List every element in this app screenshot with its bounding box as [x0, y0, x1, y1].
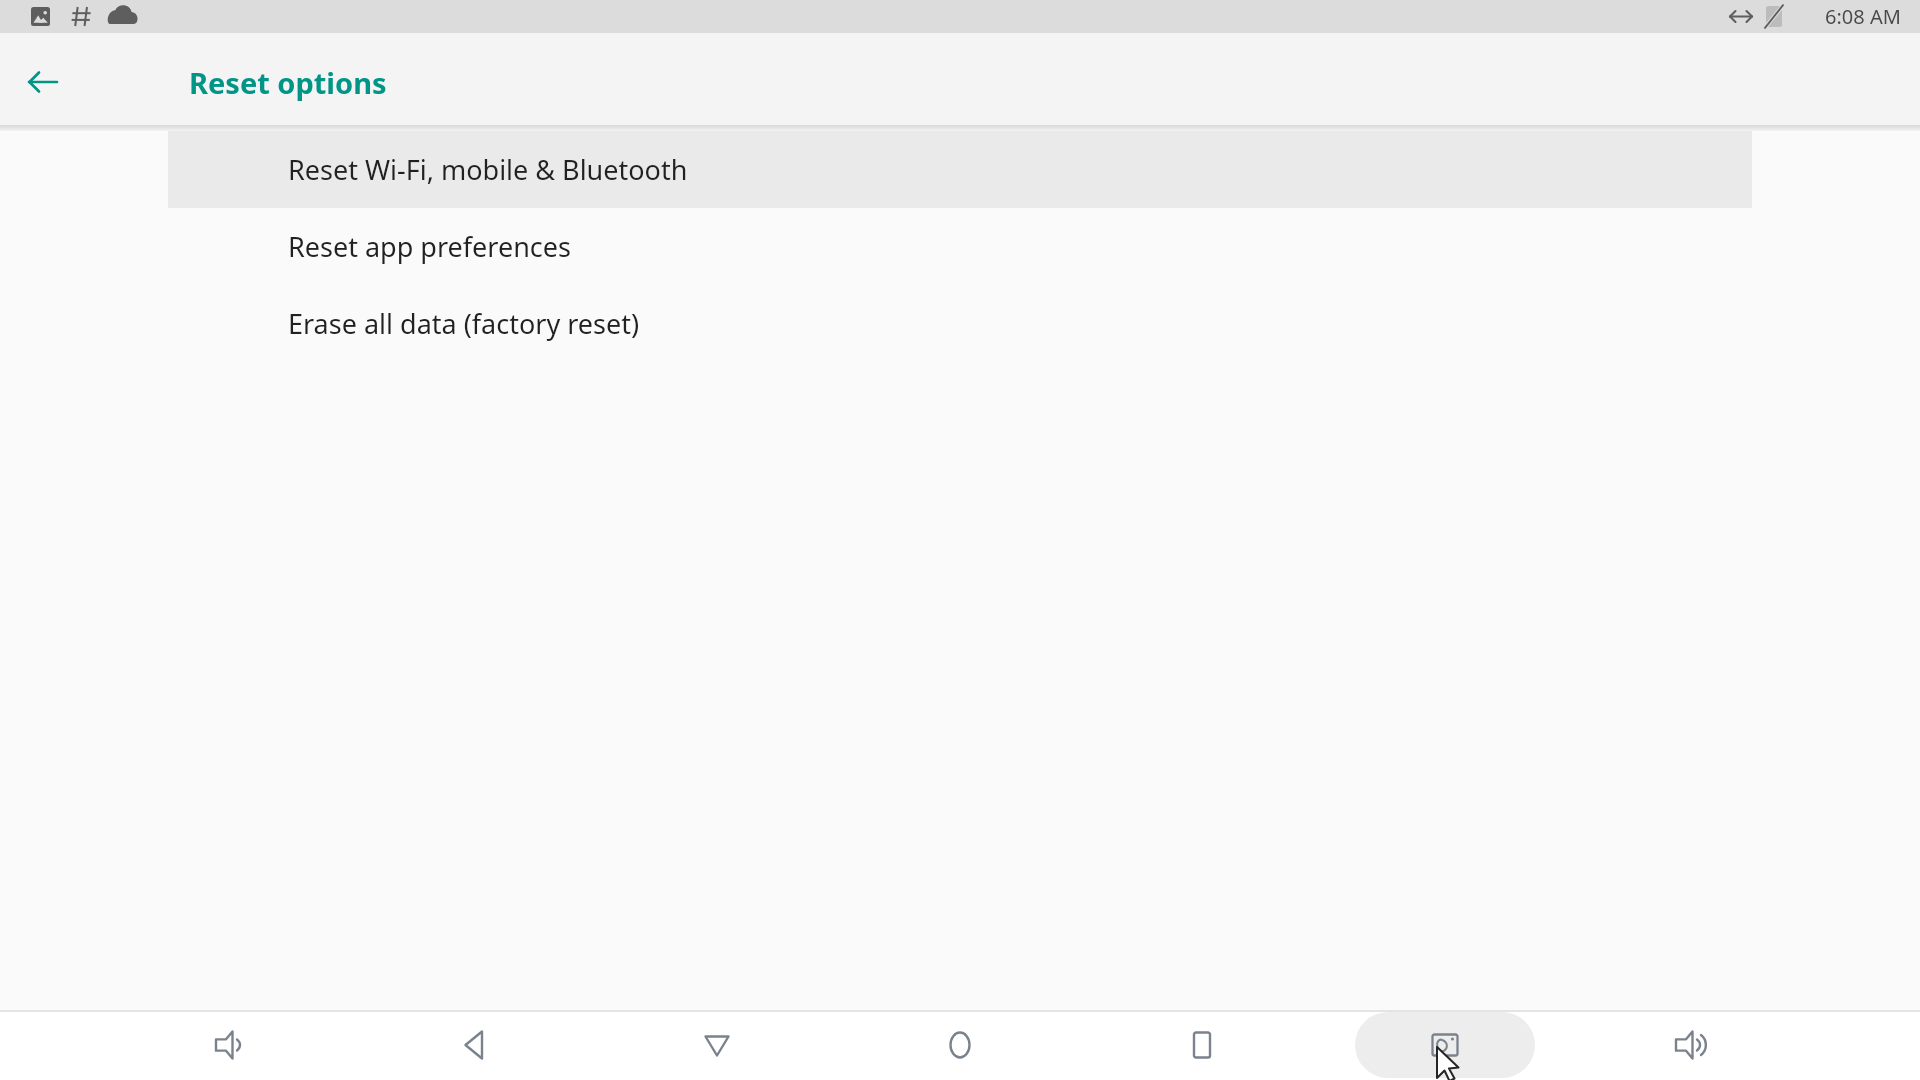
staticText: Reset app preferences	[288, 228, 571, 265]
button[interactable]: Erase all data (factory reset)	[168, 285, 1752, 362]
button[interactable]: Reset Wi-Fi, mobile & Bluetooth	[168, 131, 1752, 208]
button[interactable]: Volume up	[1645, 1010, 1735, 1080]
button[interactable]: Back	[430, 1010, 520, 1080]
staticText: Reset Wi-Fi, mobile & Bluetooth	[288, 151, 688, 188]
staticText: 6:08 AM	[1825, 3, 1901, 30]
staticText: Reset options	[189, 63, 387, 102]
button[interactable]: Back	[14, 53, 72, 111]
staticText: Erase all data (factory reset)	[288, 305, 640, 342]
button[interactable]: Recent apps	[1157, 1010, 1247, 1080]
button[interactable]: Home	[915, 1010, 1005, 1080]
button[interactable]: Volume down	[185, 1010, 275, 1080]
button[interactable]: Screenshot	[1400, 1010, 1490, 1080]
button[interactable]: Reset app preferences	[168, 208, 1752, 285]
button[interactable]: Hide keyboard	[672, 1010, 762, 1080]
